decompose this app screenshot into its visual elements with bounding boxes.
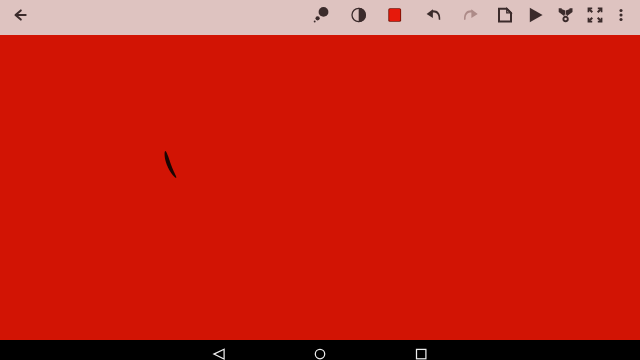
button[interactable]: Recent apps: [371, 340, 471, 360]
button[interactable]: More options: [611, 0, 630, 35]
button[interactable]: Back: [169, 340, 269, 360]
button[interactable]: Brush size: [308, 0, 338, 35]
button[interactable]: Redo: [455, 0, 485, 35]
button[interactable]: Home: [270, 340, 370, 360]
button[interactable]: Navigate up: [0, 0, 41, 35]
button[interactable]: Fullscreen: [580, 0, 610, 35]
button[interactable]: Play animation: [521, 0, 551, 35]
button[interactable]: Undo: [418, 0, 448, 35]
button[interactable]: New drawing: [489, 0, 519, 35]
button[interactable]: Merge layers: [550, 0, 580, 35]
button[interactable]: Colour: [379, 0, 409, 35]
button[interactable]: Opacity: [343, 0, 373, 35]
